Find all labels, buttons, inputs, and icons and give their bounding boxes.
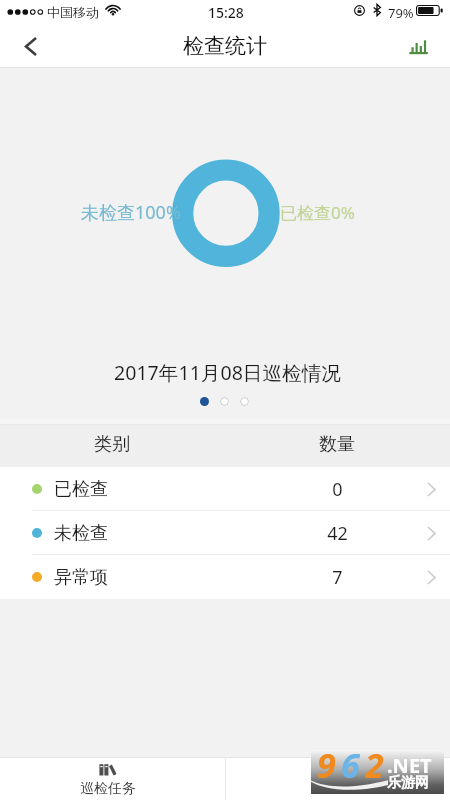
staticText: 类别 <box>94 433 130 456</box>
button[interactable]: 已检查 <box>0 467 450 511</box>
button[interactable]: Statistics chart <box>404 28 450 68</box>
staticText: 7 <box>332 565 343 590</box>
staticText: 乐游网 <box>387 774 429 792</box>
staticText: 15:28 <box>208 3 244 22</box>
staticText: 检查统计 <box>183 33 267 59</box>
staticText: 0 <box>332 477 343 502</box>
staticText: 42 <box>327 521 348 546</box>
staticText: 已检查 <box>54 478 108 501</box>
staticText: 数量 <box>319 433 355 456</box>
staticText: 2 <box>365 742 384 786</box>
staticText: 6 <box>341 742 360 786</box>
button[interactable]: Back <box>0 28 56 68</box>
button[interactable]: 巡检任务 <box>0 757 225 800</box>
staticText: 中国移动 <box>47 4 99 20</box>
staticText: 巡检任务 <box>80 780 136 798</box>
button[interactable] <box>226 757 450 800</box>
staticText: 异常项 <box>54 566 108 589</box>
button[interactable]: 异常项 <box>0 555 450 599</box>
staticText: .NET <box>387 752 432 779</box>
staticText: 79% <box>388 4 414 22</box>
button[interactable]: 未检查 <box>0 511 450 555</box>
staticText: 未检查 <box>54 522 108 545</box>
staticText: 已检查0% <box>280 201 355 224</box>
staticText: 2017年11月08日巡检情况 <box>114 359 341 386</box>
staticText: 9 <box>317 742 336 786</box>
staticText: 未检查100% <box>81 200 181 225</box>
